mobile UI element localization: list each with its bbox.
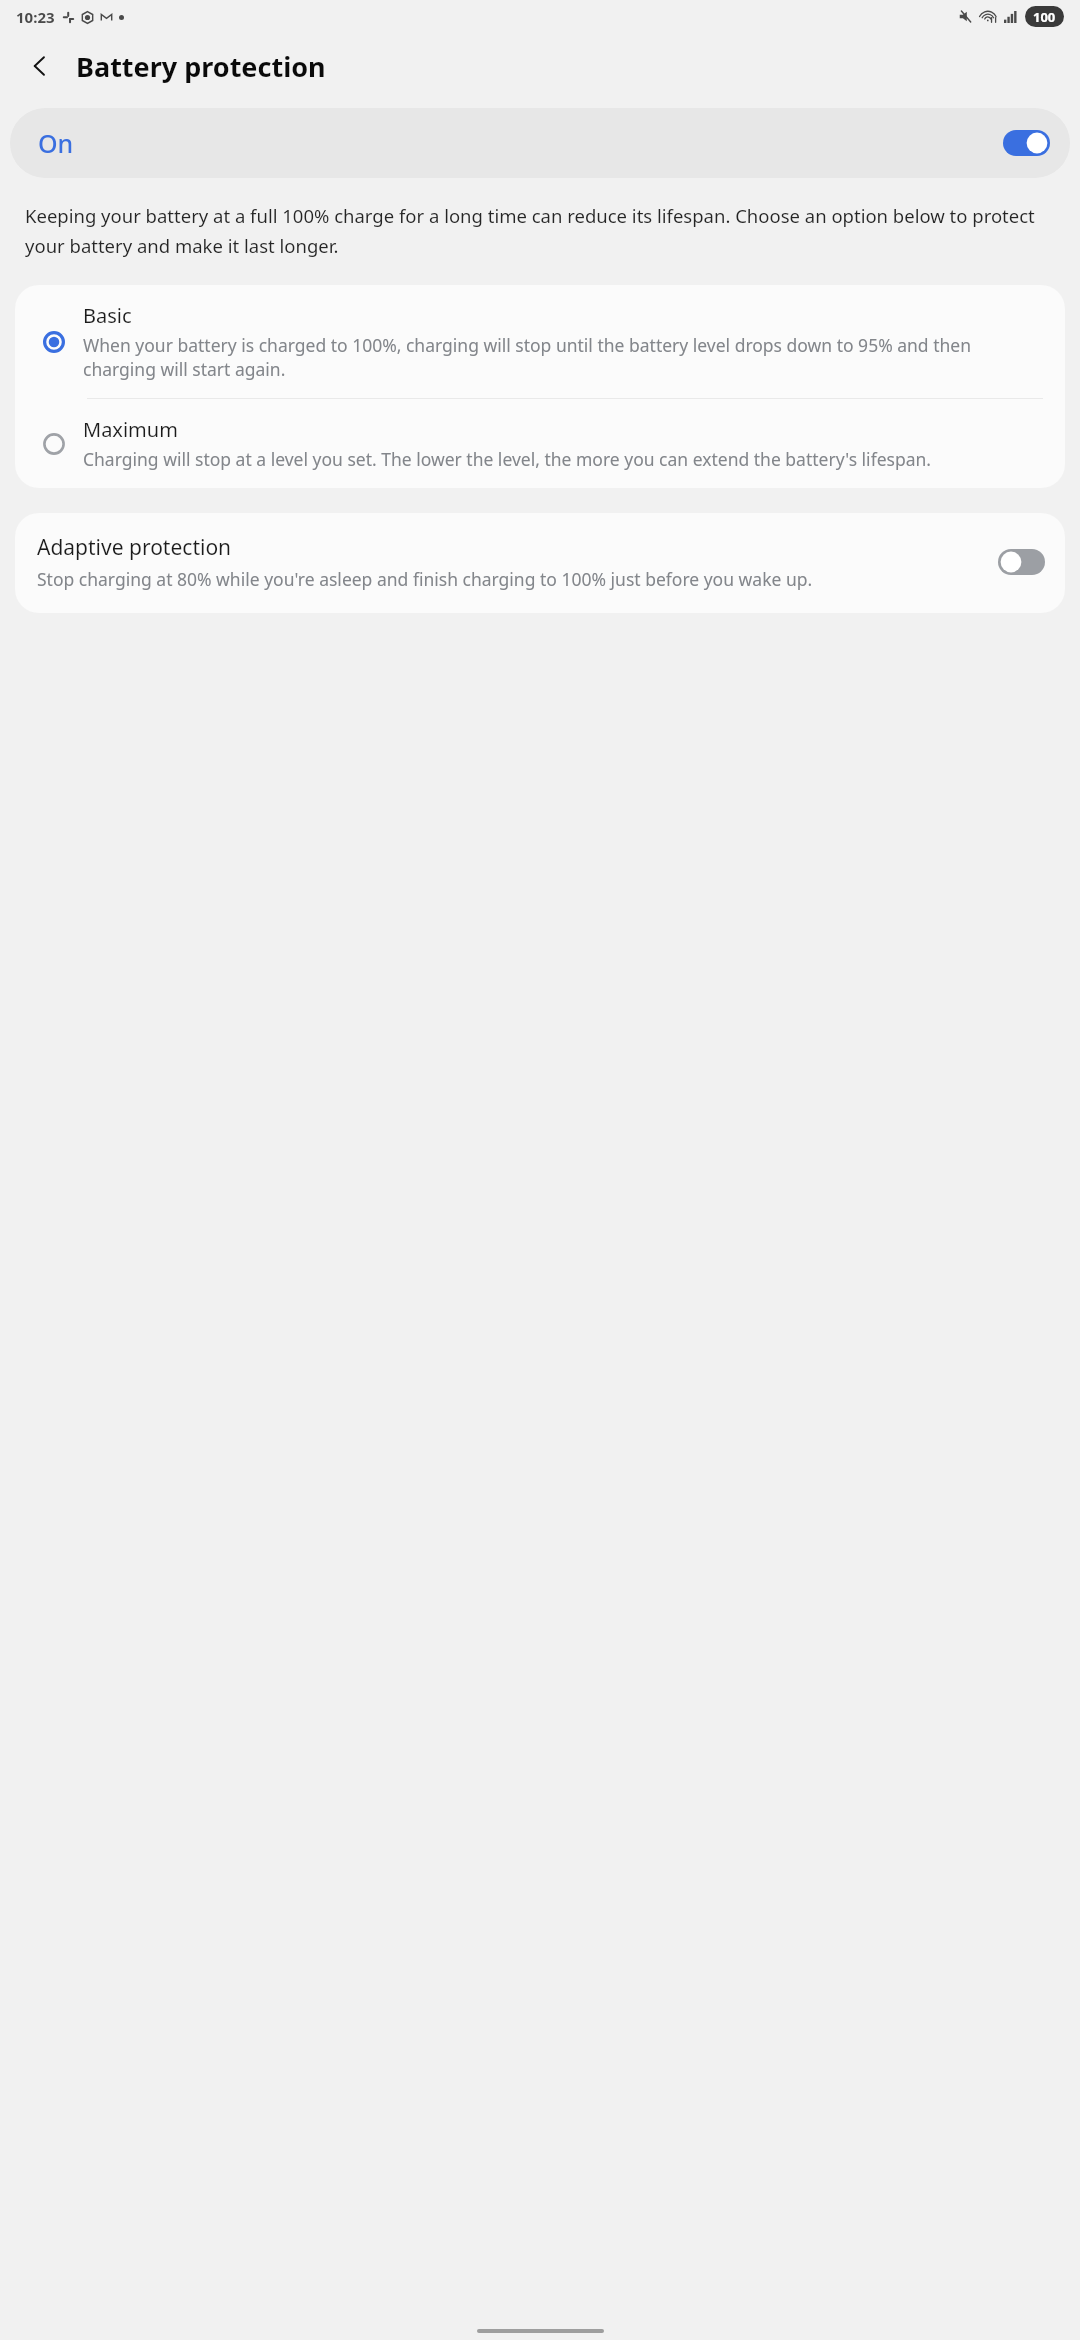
staticText: On xyxy=(38,126,74,160)
button[interactable]: Adaptive protection xyxy=(15,513,1065,613)
staticText: Adaptive protection xyxy=(37,533,232,562)
button[interactable]: Basic xyxy=(15,285,1065,398)
button[interactable]: Maximum xyxy=(15,399,1065,488)
staticText: Keeping your battery at a full 100% char… xyxy=(25,203,1055,258)
staticText: Maximum xyxy=(83,416,178,443)
staticText: 100 xyxy=(1033,8,1056,26)
staticText: Charging will stop at a level you set. T… xyxy=(83,447,931,471)
staticText: When your battery is charged to 100%, ch… xyxy=(83,333,1043,381)
staticText: Stop charging at 80% while you're asleep… xyxy=(37,567,813,591)
staticText: Basic xyxy=(83,302,132,329)
button[interactable]: On xyxy=(10,108,1070,178)
staticText: 10:23 xyxy=(16,7,55,27)
button[interactable]: Back xyxy=(16,42,64,90)
staticText: Battery protection xyxy=(76,48,326,85)
